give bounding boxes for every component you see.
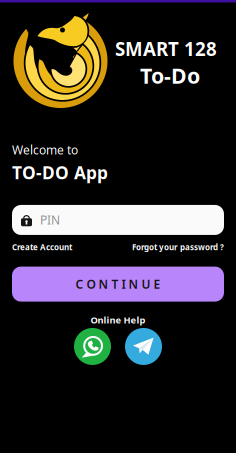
staticText: Create Account xyxy=(12,242,72,253)
staticText: TO-DO App xyxy=(12,161,108,184)
staticText: To-Do xyxy=(140,61,200,89)
staticText: SMART 128 xyxy=(115,36,217,61)
staticText: Online Help xyxy=(90,314,145,326)
button[interactable]: Forgot your password ? xyxy=(132,242,224,253)
staticText: C O N T I N U E xyxy=(75,276,160,292)
staticText: Forgot your password ? xyxy=(132,242,224,253)
staticText: PIN xyxy=(40,212,60,228)
button[interactable]: Chat on WhatsApp xyxy=(74,328,111,365)
staticText: Welcome to xyxy=(12,142,78,158)
button[interactable]: Create Account xyxy=(12,242,72,253)
button[interactable]: Chat on Telegram xyxy=(125,328,162,365)
button[interactable]: C O N T I N U E xyxy=(12,267,224,302)
